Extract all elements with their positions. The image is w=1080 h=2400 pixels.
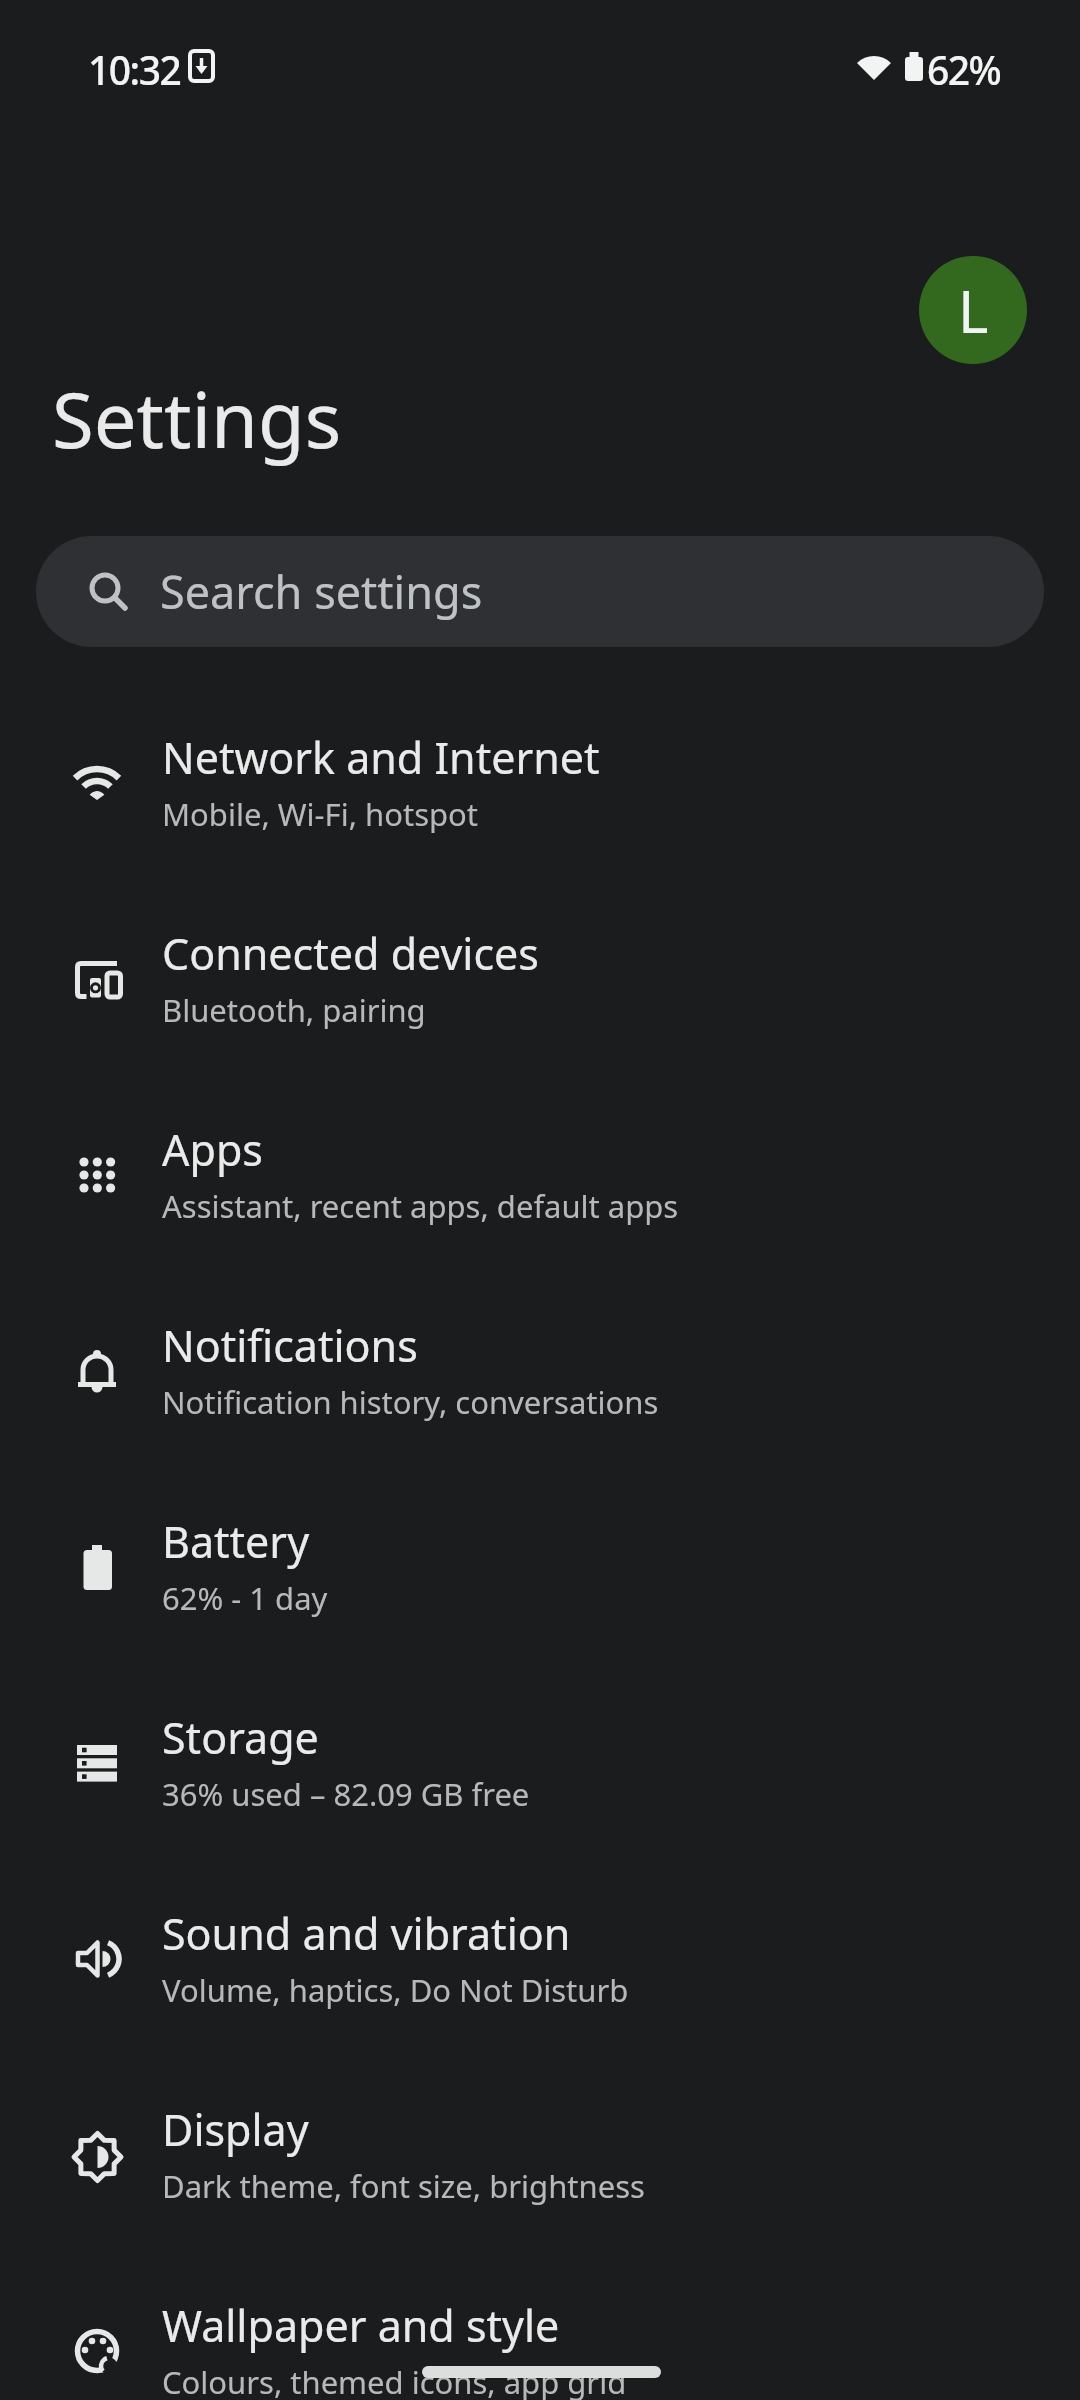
staticText: Battery bbox=[162, 1512, 310, 1571]
staticText: Storage bbox=[162, 1708, 319, 1767]
staticText: Colours, themed icons, app grid bbox=[162, 2361, 627, 2400]
button[interactable]: Connected devices bbox=[0, 883, 1080, 1079]
staticText: Wallpaper and style bbox=[162, 2296, 560, 2355]
button[interactable]: Notifications bbox=[0, 1275, 1080, 1471]
staticText: Bluetooth, pairing bbox=[162, 989, 426, 1031]
staticText: Settings bbox=[52, 367, 342, 471]
staticText: 36% used – 82.09 GB free bbox=[162, 1773, 530, 1815]
staticText: 62% bbox=[927, 43, 1001, 96]
staticText: Apps bbox=[162, 1120, 263, 1179]
staticText: Notification history, conversations bbox=[162, 1381, 659, 1423]
staticText: 10:32 bbox=[88, 43, 181, 96]
button[interactable]: Storage bbox=[0, 1667, 1080, 1863]
staticText: Mobile, Wi-Fi, hotspot bbox=[162, 793, 479, 835]
staticText: Notifications bbox=[162, 1316, 418, 1375]
staticText: Network and Internet bbox=[162, 728, 600, 787]
button[interactable]: L bbox=[919, 256, 1027, 364]
button[interactable]: Battery bbox=[0, 1471, 1080, 1667]
staticText: Sound and vibration bbox=[162, 1904, 571, 1963]
staticText: Display bbox=[162, 2100, 309, 2159]
button[interactable]: Network and Internet bbox=[0, 687, 1080, 883]
button[interactable]: Sound and vibration bbox=[0, 1863, 1080, 2059]
button[interactable]: Wallpaper and style bbox=[0, 2255, 1080, 2400]
staticText: Connected devices bbox=[162, 924, 539, 983]
staticText: Dark theme, font size, brightness bbox=[162, 2165, 645, 2207]
button[interactable]: Apps bbox=[0, 1079, 1080, 1275]
button[interactable]: Display bbox=[0, 2059, 1080, 2255]
staticText: Assistant, recent apps, default apps bbox=[162, 1185, 679, 1227]
staticText: 62% - 1 day bbox=[162, 1577, 328, 1619]
staticText: L bbox=[958, 271, 989, 350]
button[interactable]: Search settings bbox=[36, 536, 1044, 647]
staticText: Search settings bbox=[160, 561, 483, 622]
staticText: Volume, haptics, Do Not Disturb bbox=[162, 1969, 629, 2011]
